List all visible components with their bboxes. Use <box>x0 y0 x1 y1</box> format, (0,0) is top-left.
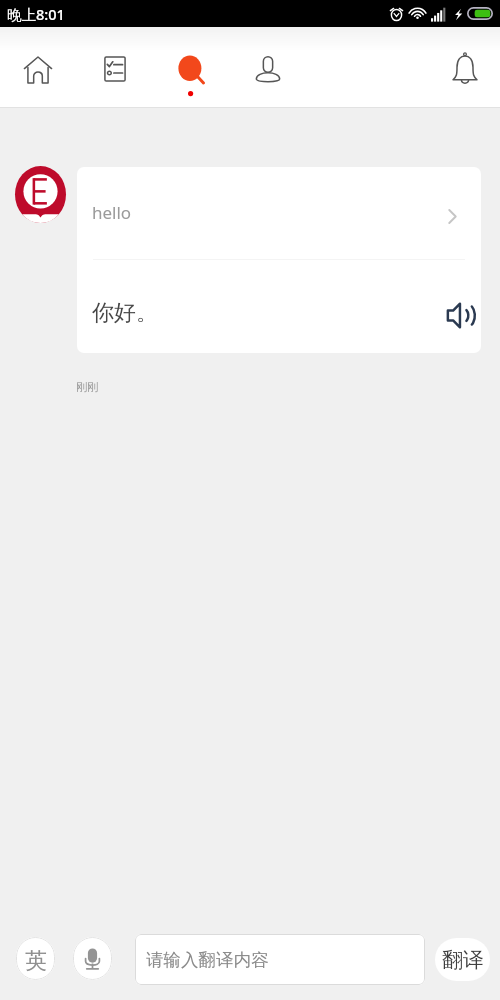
button[interactable]: Play audio <box>445 299 477 331</box>
staticText: 翻译 <box>442 947 484 973</box>
button[interactable]: 请输入翻译内容 <box>135 934 425 985</box>
button[interactable]: Voice input <box>73 937 112 980</box>
button[interactable]: Profile <box>245 46 291 92</box>
button[interactable]: hello <box>77 167 481 353</box>
button[interactable]: Search <box>167 40 215 96</box>
button[interactable]: Notes <box>92 46 138 92</box>
button[interactable]: Notifications <box>442 45 488 91</box>
button[interactable]: Home <box>15 47 61 93</box>
staticText: 你好。 <box>92 299 158 327</box>
button[interactable]: More <box>438 202 466 230</box>
staticText: 晚上8:01 <box>7 4 65 24</box>
staticText: hello <box>92 201 132 224</box>
staticText: 英 <box>25 947 47 975</box>
staticText: 刚刚 <box>76 380 98 394</box>
button[interactable]: 翻译 <box>435 938 490 981</box>
button[interactable]: 英 <box>16 937 55 980</box>
staticText: 请输入翻译内容 <box>146 949 269 971</box>
